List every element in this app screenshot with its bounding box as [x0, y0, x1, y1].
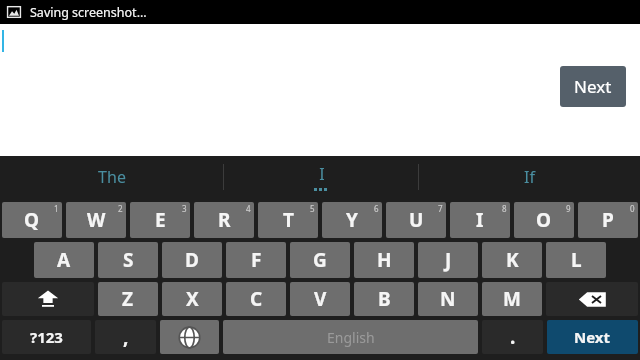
button[interactable]: I [450, 202, 510, 238]
staticText: Q [24, 207, 40, 233]
staticText: B [378, 286, 391, 312]
button[interactable]: L [546, 242, 606, 278]
staticText: V [314, 286, 327, 312]
staticText: O [536, 207, 552, 233]
button[interactable]: Next [560, 66, 626, 107]
staticText: I [476, 207, 484, 233]
button[interactable]: . [482, 320, 543, 354]
button[interactable]: Change language [160, 320, 219, 354]
staticText: If [524, 166, 535, 188]
staticText: K [506, 247, 519, 273]
staticText: Next [574, 327, 611, 347]
button[interactable]: A [34, 242, 94, 278]
button[interactable]: ?123 [2, 320, 91, 354]
button[interactable]: D [162, 242, 222, 278]
staticText: Z [122, 286, 134, 312]
staticText: R [218, 207, 231, 233]
staticText: Next [574, 75, 612, 98]
button[interactable]: , [95, 320, 156, 354]
staticText: 8 [502, 203, 507, 214]
staticText: 5 [310, 203, 315, 214]
button[interactable]: E [130, 202, 190, 238]
staticText: 0 [630, 203, 635, 214]
staticText: ?123 [30, 327, 63, 347]
staticText: G [313, 247, 327, 273]
button[interactable]: B [354, 282, 414, 316]
staticText: X [186, 286, 199, 312]
button[interactable]: Q [2, 202, 62, 238]
staticText: A [57, 247, 71, 273]
staticText: H [377, 247, 392, 273]
staticText: English [327, 328, 375, 347]
button[interactable]: C [226, 282, 286, 316]
button[interactable]: N [418, 282, 478, 316]
button[interactable]: V [290, 282, 350, 316]
button[interactable]: Z [98, 282, 158, 316]
button[interactable]: H [354, 242, 414, 278]
button[interactable]: J [418, 242, 478, 278]
staticText: The [98, 166, 126, 188]
button[interactable]: T [258, 202, 318, 238]
staticText: , [123, 324, 129, 350]
staticText: F [251, 247, 262, 273]
button[interactable]: Shift [2, 282, 94, 316]
staticText: 4 [246, 203, 251, 214]
button[interactable]: S [98, 242, 158, 278]
staticText: N [440, 286, 456, 312]
button[interactable]: G [290, 242, 350, 278]
staticText: W [87, 207, 106, 233]
staticText: C [250, 286, 263, 312]
staticText: S [123, 247, 134, 273]
button[interactable]: I [224, 156, 418, 198]
button[interactable]: P [578, 202, 638, 238]
staticText: L [571, 247, 582, 273]
button[interactable]: If [419, 156, 640, 198]
staticText: T [283, 207, 294, 233]
staticText: 2 [118, 203, 123, 214]
button[interactable]: Next [547, 320, 638, 354]
staticText: E [155, 207, 166, 233]
staticText: 1 [54, 203, 59, 214]
button[interactable]: W [66, 202, 126, 238]
staticText: I [319, 163, 325, 185]
staticText: . [510, 324, 516, 350]
staticText: 6 [374, 203, 379, 214]
staticText: 9 [566, 203, 571, 214]
button[interactable]: O [514, 202, 574, 238]
staticText: 3 [182, 203, 187, 214]
staticText: P [602, 207, 614, 233]
button[interactable]: Y [322, 202, 382, 238]
staticText: 7 [438, 203, 443, 214]
button[interactable]: R [194, 202, 254, 238]
staticText: Saving screenshot... [30, 4, 147, 21]
button[interactable]: Space [223, 320, 478, 354]
button[interactable]: X [162, 282, 222, 316]
staticText: U [409, 207, 424, 233]
button[interactable]: Backspace [546, 282, 638, 316]
button[interactable]: The [0, 156, 223, 198]
button[interactable]: U [386, 202, 446, 238]
staticText: J [445, 247, 452, 273]
button[interactable]: F [226, 242, 286, 278]
button[interactable]: M [482, 282, 542, 316]
button[interactable]: K [482, 242, 542, 278]
staticText: Y [346, 207, 358, 233]
staticText: M [503, 286, 521, 312]
staticText: D [185, 247, 199, 273]
